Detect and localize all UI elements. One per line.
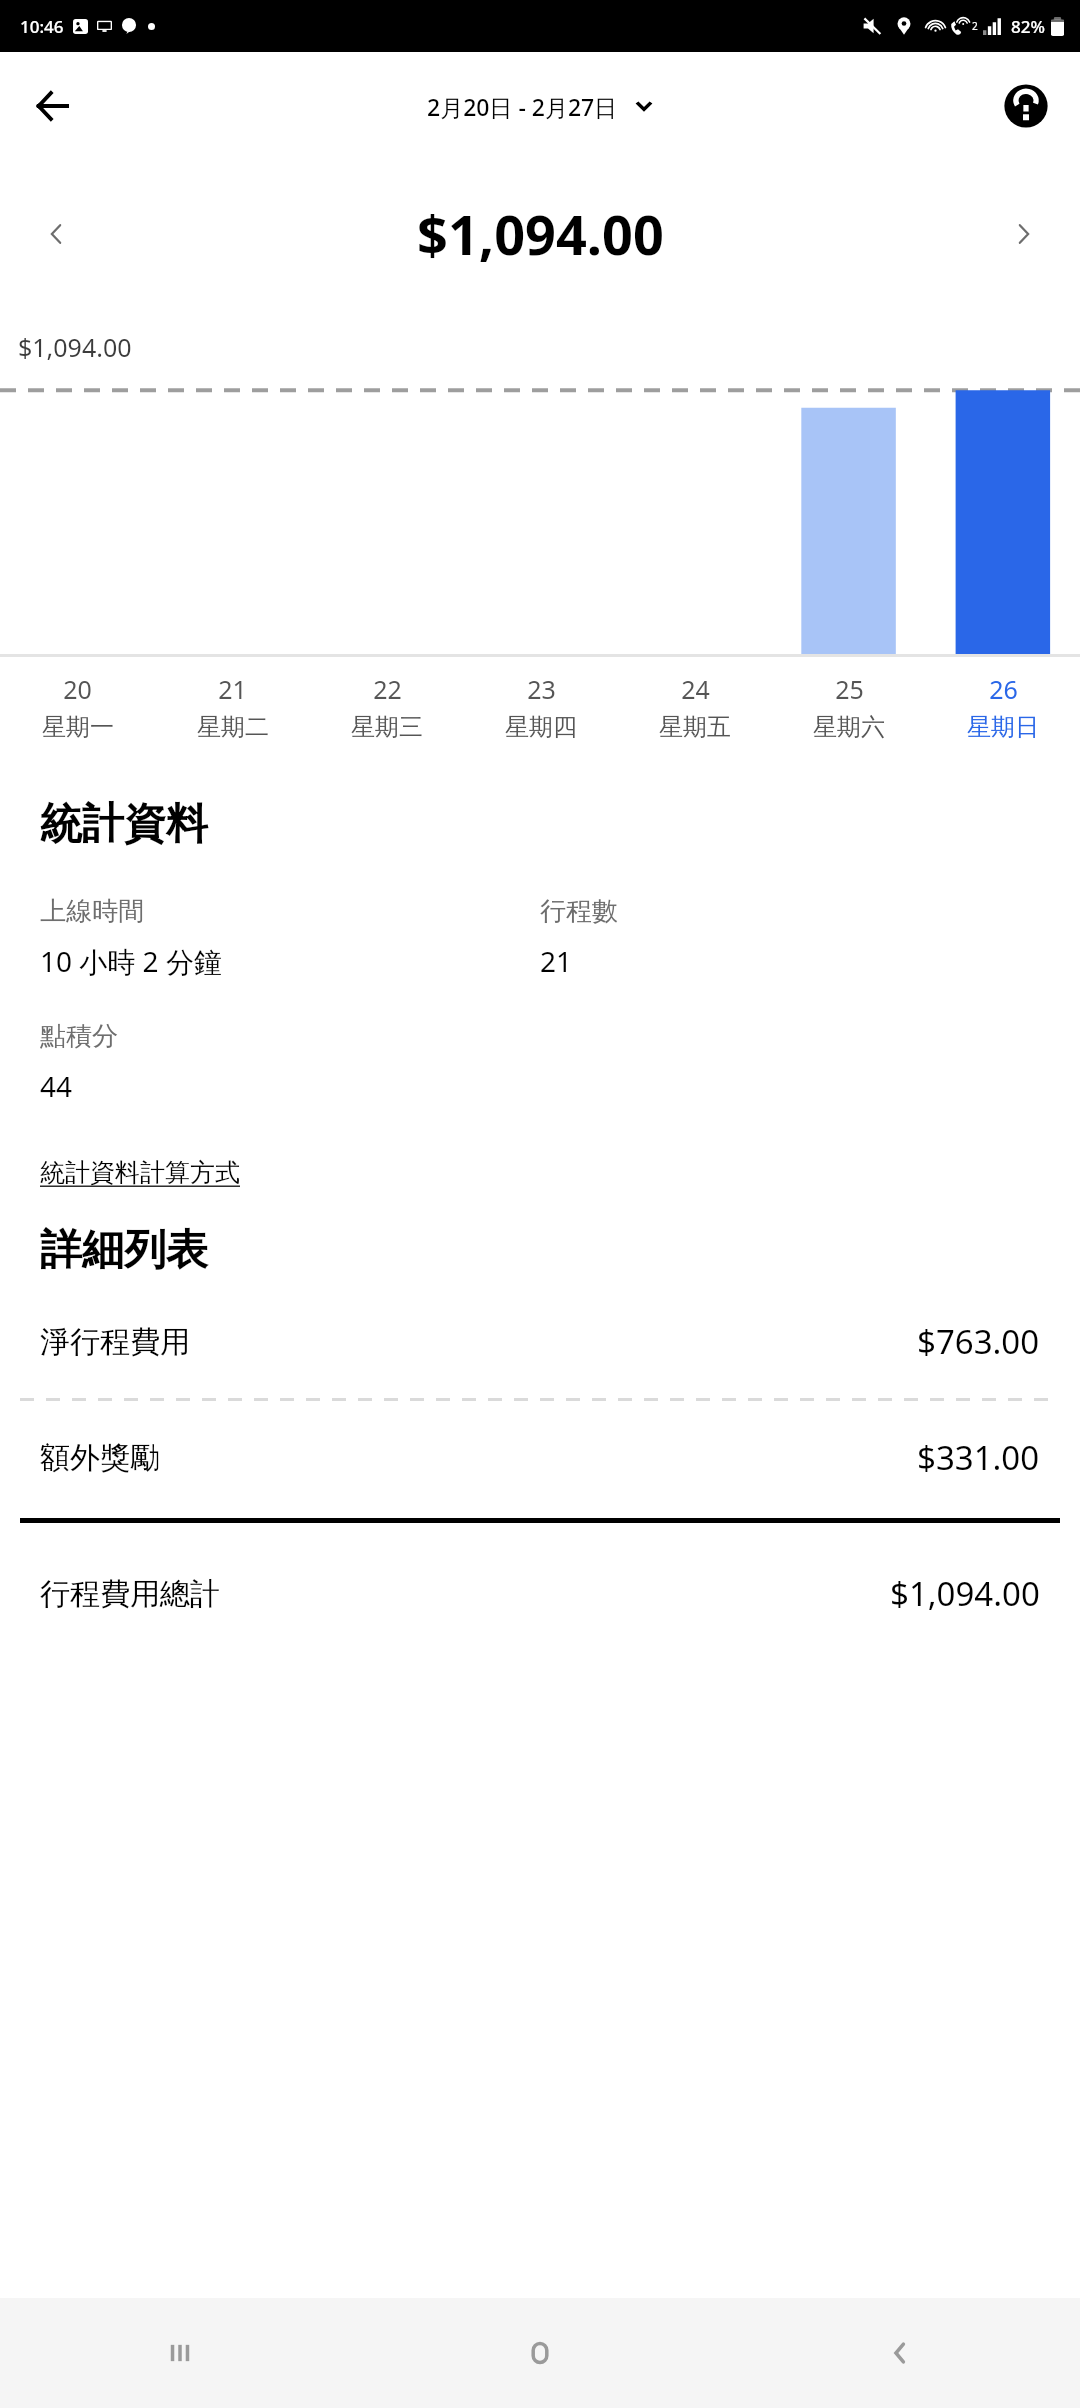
staticText: 44: [40, 1067, 73, 1105]
button[interactable]: 26: [926, 672, 1080, 742]
staticText: $1,094.00: [18, 330, 132, 364]
button[interactable]: Back: [20, 74, 84, 138]
staticText: 星期日: [967, 712, 1039, 742]
staticText: 星期六: [813, 712, 885, 742]
button[interactable]: 23: [464, 672, 618, 742]
staticText: $763.00: [917, 1319, 1040, 1364]
staticText: 10:46: [20, 15, 64, 38]
staticText: 26: [989, 672, 1018, 706]
staticText: 82%: [1011, 15, 1045, 38]
button[interactable]: 淨行程費用: [0, 1319, 1080, 1364]
button[interactable]: 20: [0, 672, 155, 742]
staticText: 星期二: [197, 712, 269, 742]
staticText: 上線時間: [40, 895, 144, 928]
button[interactable]: Recents: [0, 2298, 360, 2408]
button[interactable]: 22: [310, 672, 464, 742]
staticText: 21: [540, 942, 573, 980]
staticText: 2: [972, 19, 978, 33]
button[interactable]: 統計資料計算方式: [40, 1157, 240, 1188]
staticText: 行程費用總計: [40, 1575, 220, 1613]
staticText: 21: [218, 672, 247, 706]
button[interactable]: 額外獎勵: [0, 1435, 1080, 1480]
staticText: 星期四: [505, 712, 577, 742]
button[interactable]: 行程費用總計: [0, 1571, 1080, 1616]
button[interactable]: Home: [360, 2298, 720, 2408]
button[interactable]: 25: [772, 672, 926, 742]
staticText: 10 小時 2 分鐘: [40, 942, 222, 980]
staticText: 星期三: [351, 712, 423, 742]
staticText: 星期一: [42, 712, 114, 742]
staticText: 詳細列表: [40, 1224, 208, 1277]
staticText: 星期五: [659, 712, 731, 742]
button[interactable]: 24: [618, 672, 772, 742]
button[interactable]: Help: [996, 76, 1056, 136]
staticText: $1,094.00: [890, 1571, 1040, 1616]
staticText: 行程數: [540, 895, 618, 928]
staticText: 點積分: [40, 1020, 118, 1053]
staticText: 額外獎勵: [40, 1439, 160, 1477]
staticText: $1,094.00: [417, 197, 664, 271]
button[interactable]: Next week: [992, 202, 1056, 266]
staticText: 22: [373, 672, 402, 706]
button[interactable]: Previous week: [24, 202, 88, 266]
staticText: $331.00: [917, 1435, 1040, 1480]
staticText: 淨行程費用: [40, 1323, 190, 1361]
button[interactable]: Back: [720, 2298, 1080, 2408]
staticText: 統計資料計算方式: [40, 1157, 240, 1188]
staticText: 25: [835, 672, 864, 706]
staticText: 2月20日 - 2月27日: [427, 91, 618, 122]
button[interactable]: 21: [155, 672, 310, 742]
staticText: 20: [63, 672, 92, 706]
staticText: 23: [527, 672, 556, 706]
staticText: 24: [681, 672, 710, 706]
button[interactable]: 2月20日 - 2月27日: [419, 85, 662, 128]
staticText: 統計資料: [40, 798, 208, 851]
